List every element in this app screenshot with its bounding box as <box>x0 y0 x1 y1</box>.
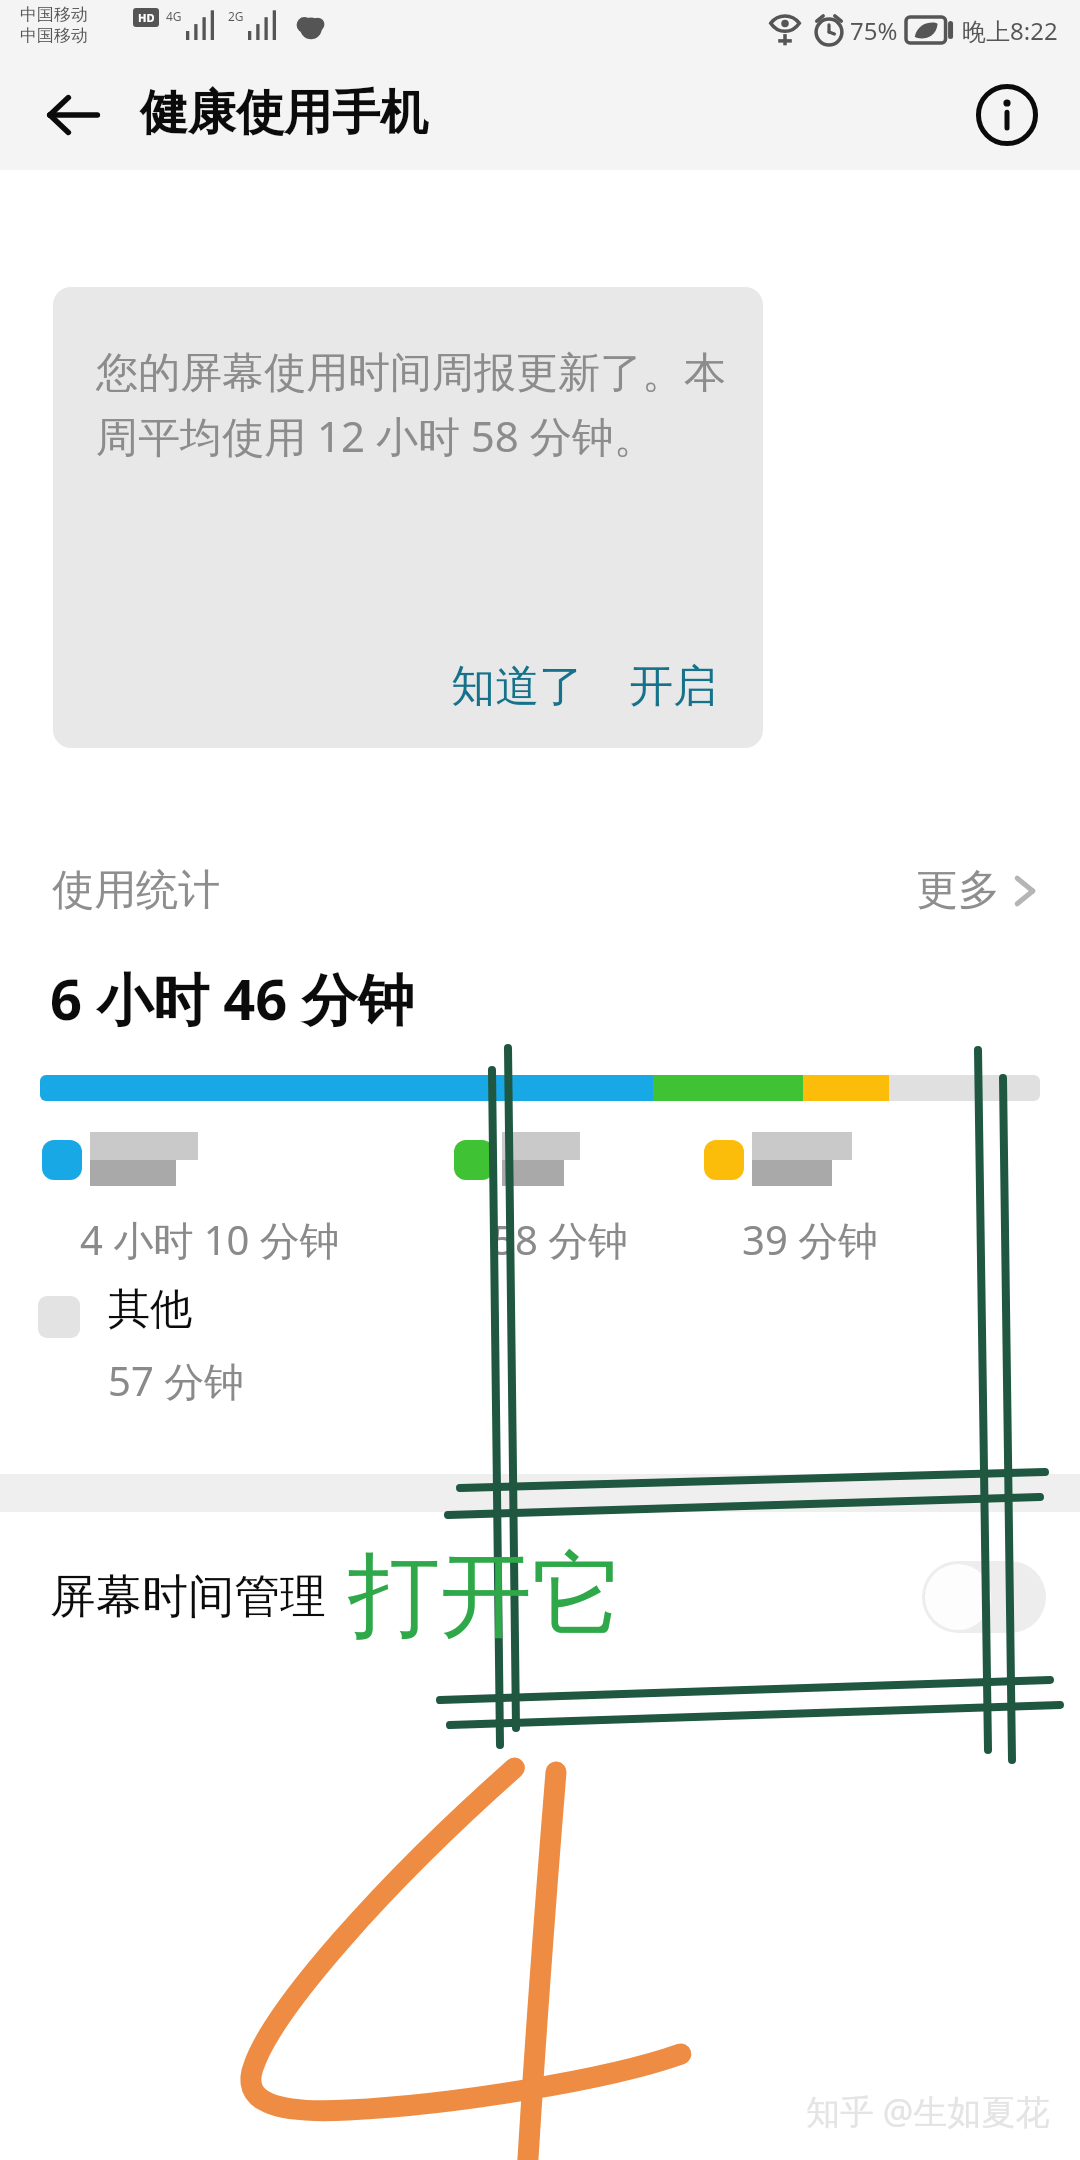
staticText: 6 小时 46 分钟 <box>50 960 414 1036</box>
staticText: 知道了 <box>451 659 583 714</box>
staticText: HD <box>138 10 155 25</box>
staticText: 健康使用手机 <box>140 83 428 143</box>
staticText: 使用统计 <box>52 864 220 917</box>
staticText: 知乎 @生如夏花 <box>806 2088 1050 2134</box>
staticText: 屏幕时间管理 <box>50 1568 326 1626</box>
staticText: 4G <box>166 8 182 24</box>
staticText: 39 分钟 <box>742 1212 879 1267</box>
staticText: 晚上8:22 <box>962 14 1058 47</box>
button[interactable]: 开启 <box>615 651 731 722</box>
staticText: 75% <box>850 14 898 47</box>
button[interactable]: 更多 <box>908 858 1046 923</box>
staticText: 打开它 <box>348 1538 624 1654</box>
button[interactable]: Screen time management toggle <box>922 1561 1046 1633</box>
staticText: 其他 <box>108 1283 192 1336</box>
staticText: 您的屏幕使用时间周报更新了。本周平均使用 12 小时 58 分钟。 <box>96 347 726 464</box>
button[interactable]: 您的屏幕使用时间周报更新了。本周平均使用 12 小时 58 分钟。 <box>53 287 763 748</box>
staticText: 58 分钟 <box>492 1212 629 1267</box>
staticText: 更多 <box>916 864 1000 917</box>
button[interactable]: Info <box>972 80 1042 150</box>
staticText: 4 小时 10 分钟 <box>80 1212 340 1267</box>
button[interactable]: 知道了 <box>437 651 597 722</box>
staticText: 中国移动 <box>20 25 88 46</box>
staticText: 开启 <box>629 659 717 714</box>
button[interactable]: Back <box>40 82 106 148</box>
staticText: 中国移动 <box>20 4 88 25</box>
staticText: 57 分钟 <box>108 1353 245 1408</box>
staticText: 2G <box>228 8 244 24</box>
button[interactable]: 屏幕时间管理 <box>0 1512 1080 1682</box>
